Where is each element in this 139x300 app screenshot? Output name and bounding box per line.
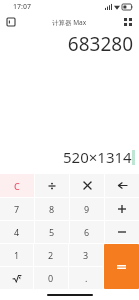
staticText: 6 bbox=[84, 226, 90, 238]
button[interactable] bbox=[35, 174, 69, 197]
staticText: 4 bbox=[14, 226, 20, 238]
staticText: 17:07 bbox=[13, 2, 31, 12]
staticText: 3 bbox=[83, 249, 89, 261]
button[interactable] bbox=[70, 174, 104, 197]
button[interactable]: More options bbox=[121, 15, 135, 29]
button[interactable]: Backspace bbox=[105, 174, 139, 197]
staticText: 0 bbox=[48, 272, 54, 284]
button[interactable]: 9 bbox=[70, 198, 104, 220]
staticText: 5 bbox=[49, 226, 55, 238]
button[interactable]: 3 bbox=[69, 244, 103, 266]
button[interactable] bbox=[105, 198, 139, 220]
staticText: 520×1314 bbox=[63, 147, 132, 167]
button[interactable]: 4 bbox=[0, 221, 34, 243]
staticText: 1 bbox=[14, 249, 20, 261]
staticText: 8 bbox=[49, 203, 55, 215]
staticText: 9 bbox=[84, 203, 90, 215]
button[interactable]: 6 bbox=[70, 221, 104, 243]
button[interactable]: C bbox=[0, 174, 34, 197]
button[interactable] bbox=[105, 221, 139, 243]
button[interactable]: Equals bbox=[104, 244, 139, 289]
staticText: 683280 bbox=[67, 31, 133, 57]
button[interactable]: 8 bbox=[35, 198, 69, 220]
staticText: 2 bbox=[48, 249, 54, 261]
button[interactable]: 0 bbox=[34, 267, 68, 289]
button[interactable]: History bbox=[4, 15, 18, 29]
button[interactable]: . bbox=[69, 267, 103, 289]
staticText: 7 bbox=[14, 203, 20, 215]
button[interactable]: Square root bbox=[0, 267, 33, 289]
button[interactable]: 2 bbox=[34, 244, 68, 266]
button[interactable]: 5 bbox=[35, 221, 69, 243]
staticText: . bbox=[85, 272, 88, 284]
staticText: 计算器 Max bbox=[52, 18, 87, 27]
button[interactable]: 7 bbox=[0, 198, 34, 220]
staticText: C bbox=[14, 180, 20, 192]
button[interactable]: 1 bbox=[0, 244, 33, 266]
